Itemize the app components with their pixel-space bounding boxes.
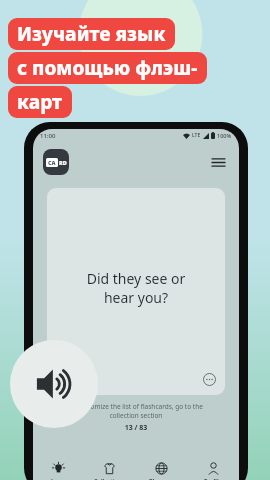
staticText: Learn — [51, 477, 67, 480]
staticText: Profile — [204, 477, 222, 480]
staticText: 13 / 83 — [33, 423, 239, 433]
button[interactable]: Play audio — [10, 340, 98, 428]
staticText: Collections — [94, 477, 125, 480]
staticText: RD — [59, 159, 67, 166]
button[interactable]: App logo — [43, 149, 69, 175]
staticText: 11:00 — [40, 132, 56, 140]
staticText: To customize the list of flashcards, go … — [33, 402, 239, 420]
staticText: LTE — [192, 132, 201, 139]
staticText: 100% — [217, 132, 232, 139]
staticText: с помощью флэш- — [17, 55, 198, 81]
button[interactable]: More options — [203, 373, 216, 386]
button[interactable]: Collections — [84, 456, 135, 480]
button[interactable]: Menu — [207, 151, 229, 173]
button[interactable]: Did they see or hear you? — [47, 188, 225, 395]
staticText: Bloggers — [149, 477, 174, 480]
staticText: карт — [17, 89, 63, 115]
staticText: Изучайте язык — [17, 21, 166, 47]
button[interactable]: Learn — [33, 456, 84, 480]
button[interactable]: Profile — [187, 456, 239, 480]
button[interactable]: Bloggers — [135, 456, 187, 480]
staticText: CA — [48, 159, 56, 166]
staticText: Did they see or hear you? — [47, 269, 225, 307]
